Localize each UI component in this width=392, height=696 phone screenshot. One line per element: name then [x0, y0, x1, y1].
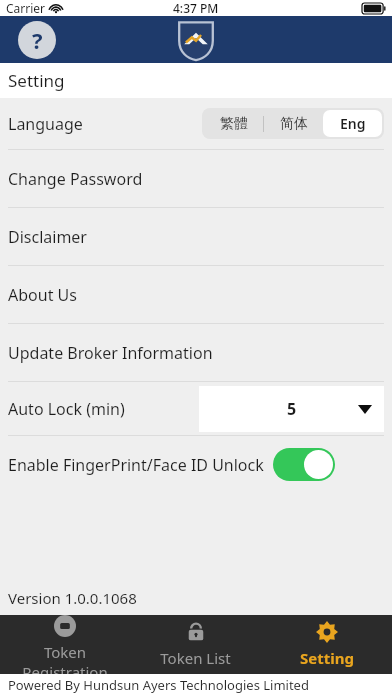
staticText: ?	[32, 25, 43, 55]
button[interactable]: Help	[18, 21, 56, 59]
staticText: Auto Lock (min)	[8, 398, 125, 420]
button[interactable]: Token Registration	[0, 615, 130, 674]
button[interactable]: Setting	[261, 615, 392, 674]
button[interactable]: Enable FingerPrint or Face ID Unlock tog…	[273, 448, 335, 481]
button[interactable]: Eng	[323, 110, 382, 137]
staticText: Language	[8, 113, 83, 135]
staticText: Version 1.0.0.1068	[8, 588, 137, 608]
staticText: Powered By Hundsun Ayers Technologies Li…	[8, 676, 309, 694]
staticText: Carrier	[6, 0, 46, 16]
staticText: Change Password	[8, 168, 143, 190]
button[interactable]: Update Broker Information	[0, 324, 392, 381]
staticText: Disclaimer	[8, 226, 87, 248]
button[interactable]: 简体	[264, 110, 323, 137]
staticText: 4:37 PM	[173, 0, 219, 16]
staticText: Eng	[340, 114, 366, 133]
staticText: 5	[287, 398, 297, 420]
staticText: Token List	[160, 648, 231, 668]
button[interactable]: Change Password	[0, 150, 392, 207]
button[interactable]: 5	[199, 386, 384, 432]
staticText: Token Registration	[0, 642, 130, 674]
button[interactable]: Disclaimer	[0, 208, 392, 265]
staticText: Setting	[300, 648, 354, 668]
staticText: 繁體	[220, 115, 248, 133]
button[interactable]: 繁體	[204, 110, 263, 137]
staticText: Setting	[8, 69, 65, 92]
button[interactable]: Token List	[130, 615, 261, 674]
staticText: 简体	[280, 115, 308, 133]
button[interactable]: About Us	[0, 266, 392, 323]
staticText: Update Broker Information	[8, 342, 213, 364]
staticText: About Us	[8, 284, 77, 306]
staticText: Enable FingerPrint/Face ID Unlock	[8, 454, 264, 476]
